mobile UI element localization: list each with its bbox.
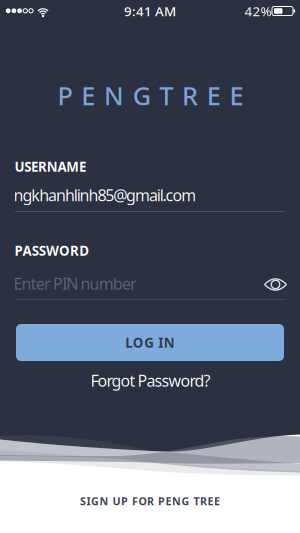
staticText: S <box>80 494 86 508</box>
staticText: P <box>57 79 72 112</box>
staticText: R <box>200 494 207 508</box>
staticText: Forgot Password? <box>90 370 210 391</box>
staticText: O <box>138 494 146 508</box>
staticText: P <box>158 494 165 508</box>
staticText: N <box>164 334 175 351</box>
staticText: F <box>132 494 138 508</box>
staticText: I <box>86 494 90 508</box>
staticText: T <box>193 494 199 508</box>
staticText: N <box>172 494 181 508</box>
staticText: G <box>144 334 154 351</box>
staticText: 42% <box>244 2 271 20</box>
staticText: E <box>207 79 221 112</box>
staticText: USERNAME <box>14 158 86 175</box>
staticText: G <box>181 494 189 508</box>
staticText: I <box>158 334 163 351</box>
staticText: P <box>121 494 128 508</box>
staticText: E <box>207 494 213 508</box>
staticText: ngkhanhlinh85@gmail.com <box>13 184 196 206</box>
staticText: L <box>125 334 132 351</box>
staticText: N <box>104 79 124 112</box>
staticText: G <box>91 494 99 508</box>
staticText: E <box>165 494 171 508</box>
staticText: O <box>133 334 144 351</box>
staticText: E <box>81 79 95 112</box>
staticText: T <box>159 79 173 112</box>
staticText: 9:41 AM <box>124 2 176 20</box>
staticText: R <box>147 494 154 508</box>
staticText: N <box>99 494 108 508</box>
staticText: U <box>112 494 120 508</box>
staticText: Enter PIN number <box>13 273 137 294</box>
staticText: R <box>182 79 198 112</box>
staticText: E <box>214 494 220 508</box>
staticText: E <box>229 79 243 112</box>
staticText: PASSWORD <box>14 242 89 259</box>
staticText: G <box>133 79 151 112</box>
